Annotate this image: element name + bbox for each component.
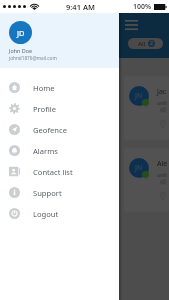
button[interactable]: Contact list	[0, 161, 119, 182]
staticText: JN	[135, 163, 143, 173]
button[interactable]: JN	[124, 76, 169, 140]
button[interactable]: Home	[0, 77, 119, 98]
staticText: 2	[150, 40, 153, 47]
button[interactable]: Alarms	[0, 140, 119, 161]
button[interactable]: Profile	[0, 98, 119, 119]
button[interactable]: Support	[0, 182, 119, 203]
button[interactable]: Logout	[0, 203, 119, 224]
staticText: Profile	[33, 104, 56, 114]
staticText: JD	[17, 28, 25, 38]
staticText: online	[157, 99, 169, 106]
staticText: online	[157, 171, 169, 178]
staticText: Alex	[157, 159, 169, 169]
button[interactable]: Geofence	[0, 119, 119, 140]
staticText: Geofence	[33, 125, 67, 135]
staticText: johnd1876@mail.com	[9, 55, 57, 61]
staticText: Home	[33, 83, 55, 93]
button[interactable]: JN	[124, 148, 169, 212]
staticText: Contact list	[33, 167, 73, 177]
button[interactable]: All	[128, 38, 163, 49]
staticText: All	[138, 40, 146, 48]
staticText: 100%	[133, 2, 152, 12]
staticText: JN	[135, 91, 143, 101]
staticText: Jackson	[157, 87, 169, 97]
staticText: Support	[33, 188, 62, 198]
staticText: John Doe	[9, 47, 33, 54]
staticText: Logout	[33, 209, 59, 219]
staticText: 9:41 AM	[66, 2, 95, 12]
staticText: Alarms	[33, 146, 58, 156]
button[interactable]: Open navigation menu	[121, 14, 142, 35]
